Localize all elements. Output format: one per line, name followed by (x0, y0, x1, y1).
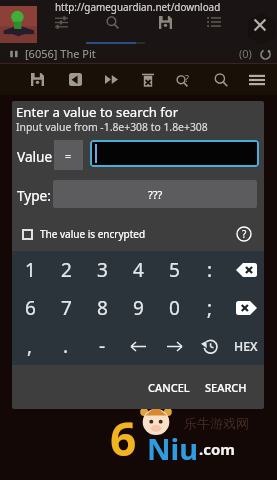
staticText: The value is encrypted (40, 227, 146, 241)
button[interactable]: Save page (154, 11, 176, 33)
staticText: 6 (25, 295, 36, 321)
button[interactable]: Delete (228, 289, 264, 327)
button[interactable]: Move left (120, 327, 156, 365)
button[interactable]: = (54, 140, 83, 170)
button[interactable]: Save (24, 67, 50, 92)
button[interactable]: Close (246, 13, 277, 45)
staticText: 1 (25, 257, 36, 283)
button[interactable]: The value is encrypted (22, 225, 146, 243)
staticText: 8 (97, 295, 108, 321)
button[interactable]: SEARCH (199, 374, 253, 401)
button[interactable]: 6 (12, 289, 48, 327)
staticText: ? (242, 227, 247, 241)
button[interactable]: Delete (135, 67, 161, 92)
button[interactable]: - (84, 327, 120, 365)
staticText: CANCEL (148, 380, 190, 395)
button[interactable]: CANCEL (142, 374, 196, 401)
staticText: Type: (17, 186, 51, 205)
button[interactable]: Search options (171, 67, 197, 92)
staticText: Value (17, 147, 53, 166)
staticText: 3 (97, 257, 108, 283)
button[interactable]: Backspace (228, 251, 264, 289)
staticText: Enter a value to search for (16, 103, 179, 121)
button[interactable]: Filters (50, 11, 72, 33)
button[interactable]: 9 (120, 289, 156, 327)
staticText: 9 (133, 295, 144, 321)
button[interactable]: Menu (244, 67, 270, 92)
staticText: .com (199, 439, 235, 459)
button[interactable]: , (12, 327, 48, 365)
button[interactable]: 1 (12, 251, 48, 289)
staticText: Niu (147, 429, 199, 468)
staticText: HEX (234, 338, 258, 355)
staticText: 2 (61, 257, 72, 283)
staticText: . (63, 333, 69, 359)
button[interactable]: ; (192, 289, 228, 327)
button[interactable]: 5 (156, 251, 192, 289)
button[interactable]: Move right (156, 327, 192, 365)
button[interactable]: 8 (84, 289, 120, 327)
button[interactable]: 7 (48, 289, 84, 327)
button[interactable]: ??? (53, 180, 257, 208)
staticText: ? (185, 72, 189, 84)
button[interactable] (90, 140, 259, 167)
button[interactable]: Search (101, 11, 123, 33)
staticText: - (99, 333, 106, 359)
button[interactable]: HEX (228, 327, 264, 365)
staticText: : (207, 257, 213, 283)
staticText: http://gameguardian.net/download (55, 0, 221, 13)
button[interactable]: 2 (48, 251, 84, 289)
staticText: THE (130, 40, 170, 69)
staticText: [6056] The Pit (25, 46, 96, 61)
button[interactable]: : (192, 251, 228, 289)
button[interactable]: Refresh (257, 46, 273, 62)
button[interactable]: Search (208, 67, 234, 92)
button[interactable]: Bookmarks (203, 11, 225, 33)
staticText: 0 (169, 295, 180, 321)
staticText: Input value from -1.8e+308 to 1.8e+308 (16, 120, 208, 134)
staticText: 7 (61, 295, 72, 321)
staticText: ; (207, 295, 213, 321)
staticText: (0) (239, 46, 252, 61)
button[interactable]: Load (62, 67, 88, 92)
button[interactable]: 3 (84, 251, 120, 289)
staticText: 乐牛游戏网 (184, 415, 249, 431)
staticText: 4 (133, 257, 144, 283)
button[interactable]: 4 (120, 251, 156, 289)
staticText: ??? (148, 187, 163, 202)
button[interactable]: Help (234, 224, 254, 244)
button[interactable]: 0 (156, 289, 192, 327)
staticText: , (27, 333, 33, 359)
button[interactable]: . (48, 327, 84, 365)
button[interactable]: Fast forward (98, 67, 124, 92)
button[interactable]: Pause (7, 47, 21, 61)
staticText: 5 (169, 257, 180, 283)
button[interactable]: History (192, 327, 228, 365)
staticText: = (65, 148, 72, 163)
staticText: SEARCH (205, 380, 247, 395)
staticText: 6 (110, 407, 137, 470)
